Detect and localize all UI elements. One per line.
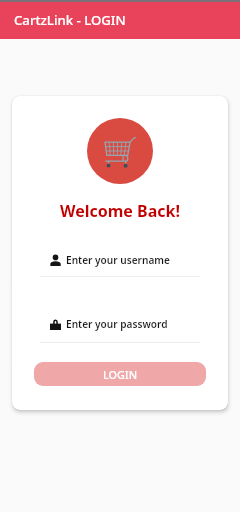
staticText: Enter your password [66, 317, 168, 331]
button[interactable]: LOGIN [34, 362, 206, 386]
other: Person [50, 255, 61, 266]
staticText: Welcome Back! [12, 200, 228, 222]
button[interactable]: Lock [40, 317, 200, 343]
other: Lock [50, 319, 61, 330]
staticText: LOGIN [103, 367, 138, 382]
button[interactable]: Person [40, 253, 200, 277]
staticText: CartzLink - LOGIN [14, 11, 126, 29]
staticText: Enter your username [66, 253, 170, 267]
